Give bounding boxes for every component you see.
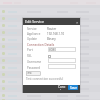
staticText: Password	[27, 66, 41, 70]
staticText: Router	[47, 27, 57, 31]
button[interactable]: Cancel	[58, 85, 66, 90]
button[interactable]: Close	[75, 20, 79, 24]
button[interactable]	[0, 50, 100, 57]
staticText: Port	[27, 48, 33, 52]
button[interactable]	[0, 64, 100, 71]
staticText: Test Connection	[26, 71, 41, 76]
button[interactable]	[0, 99, 100, 100]
button[interactable]: SSL	[48, 55, 51, 58]
staticText: Edit Service	[25, 19, 44, 24]
button[interactable]	[0, 78, 100, 85]
staticText: Save	[70, 86, 77, 90]
staticText: Appliance	[27, 32, 41, 36]
button[interactable]: text field	[48, 47, 76, 52]
staticText: 192.168.1.10	[47, 32, 65, 36]
staticText: SSL	[27, 54, 32, 58]
button[interactable]	[0, 43, 100, 50]
staticText: Update	[27, 37, 37, 41]
staticText: Connection Details	[27, 43, 55, 47]
button[interactable]: Test Connection	[26, 71, 41, 76]
button[interactable]	[0, 15, 100, 22]
button[interactable]	[0, 36, 100, 43]
staticText: Binary	[47, 37, 56, 41]
staticText: 8080	[49, 48, 56, 52]
button[interactable]	[0, 8, 100, 15]
staticText: Test connection successful	[26, 77, 64, 81]
button[interactable]: text field	[48, 58, 76, 63]
staticText: Cancel	[58, 85, 66, 90]
button[interactable]	[0, 22, 100, 29]
button[interactable]	[0, 71, 100, 78]
button[interactable]: Save	[68, 85, 78, 90]
staticText: Username	[27, 60, 42, 64]
staticText: Service	[27, 27, 37, 31]
button[interactable]	[0, 57, 100, 64]
button[interactable]: text field	[48, 64, 76, 69]
button[interactable]	[0, 29, 100, 36]
button[interactable]	[0, 92, 100, 99]
staticText: ×	[76, 20, 79, 24]
button[interactable]	[0, 85, 100, 92]
